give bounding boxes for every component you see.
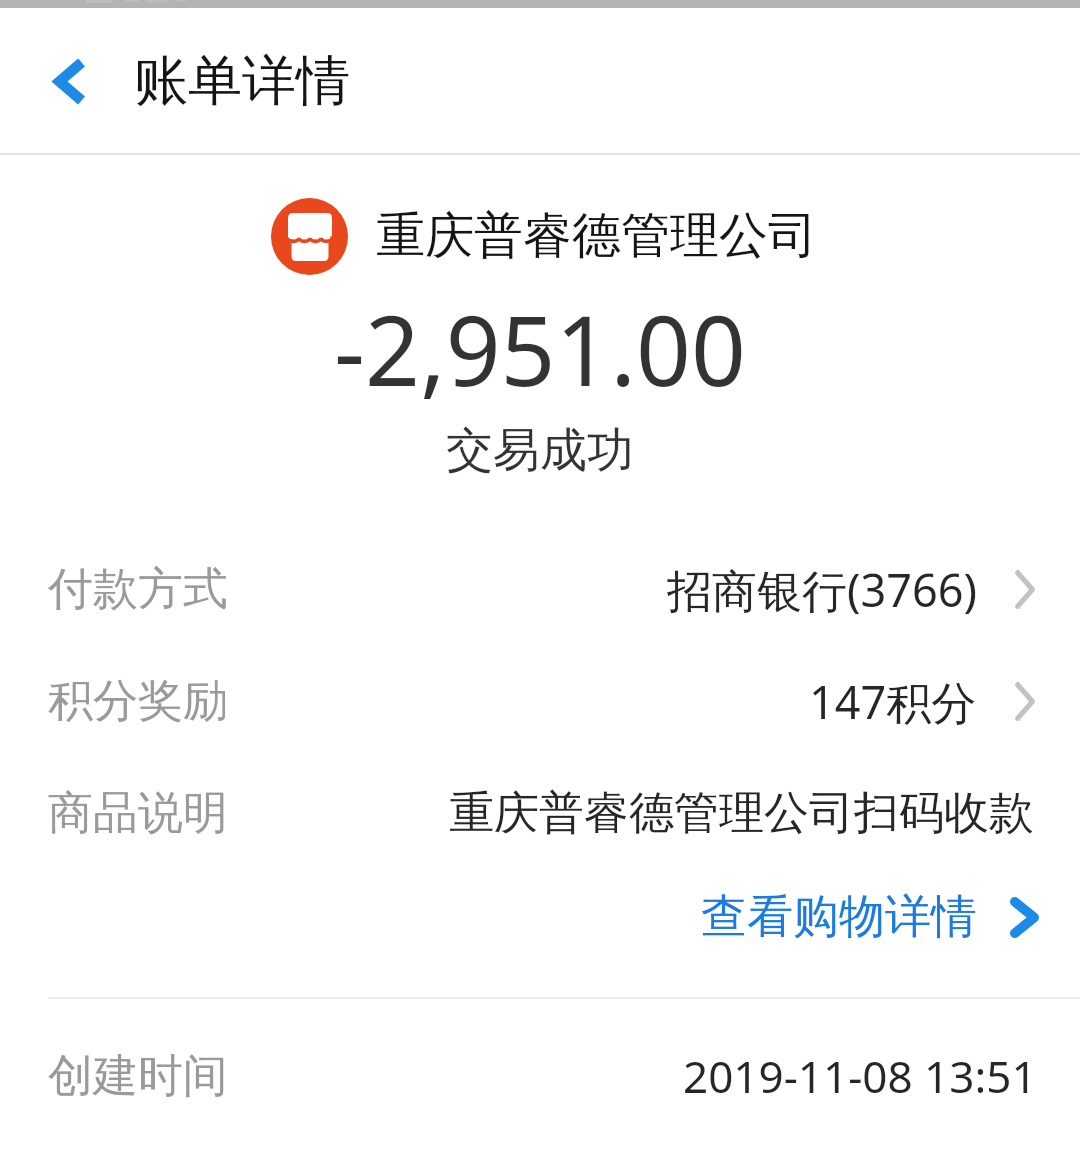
staticText: 查看购物详情	[701, 888, 977, 946]
staticText: 付款方式	[48, 561, 228, 618]
staticText: 账单详情	[134, 47, 350, 115]
staticText: 积分奖励	[48, 673, 228, 730]
staticText: 交易成功	[0, 421, 1080, 480]
button[interactable]: 商品说明	[0, 757, 1080, 869]
button[interactable]: 积分奖励	[0, 645, 1080, 757]
staticText: 商品说明	[48, 785, 228, 842]
staticText: 创建时间	[48, 1048, 228, 1105]
staticText: 2019-11-08 13:51	[683, 1046, 1037, 1106]
staticText: -2,951.00	[0, 283, 1080, 414]
button[interactable]: 创建时间	[0, 1020, 1080, 1132]
staticText: 招商银行(3766)	[667, 559, 977, 620]
button[interactable]: 查看购物详情	[0, 861, 1080, 973]
staticText: 重庆普睿德管理公司扫码收款	[449, 785, 1034, 842]
button[interactable]: Back	[30, 47, 110, 115]
staticText: 重庆普睿德管理公司	[376, 205, 817, 267]
staticText: 147积分	[809, 671, 977, 732]
button[interactable]: 付款方式	[0, 533, 1080, 645]
